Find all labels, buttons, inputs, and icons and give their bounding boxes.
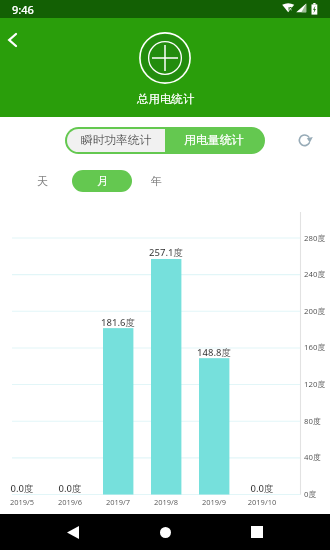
staticText: 40度: [304, 452, 321, 463]
button[interactable]: Back: [55, 514, 91, 550]
staticText: 0.0度: [0, 482, 52, 495]
staticText: 200度: [304, 306, 326, 317]
staticText: 0.0度: [232, 482, 292, 495]
staticText: 年: [151, 174, 162, 188]
staticText: 用电量统计: [184, 133, 244, 148]
staticText: 2019/10: [232, 497, 292, 507]
staticText: 2019/9: [184, 497, 244, 507]
button[interactable]: Recent apps: [239, 514, 275, 550]
staticText: 天: [37, 174, 48, 188]
staticText: 148.8度: [184, 346, 244, 359]
button[interactable]: 天: [30, 170, 54, 192]
staticText: 2019/5: [0, 497, 52, 507]
staticText: 0.0度: [40, 482, 100, 495]
staticText: 瞬时功率统计: [81, 133, 152, 148]
button[interactable]: Refresh: [293, 129, 316, 152]
staticText: 80度: [304, 416, 321, 427]
button[interactable]: Home: [147, 514, 183, 550]
staticText: 9:46: [12, 2, 34, 17]
staticText: 280度: [304, 233, 326, 244]
staticText: 257.1度: [136, 246, 196, 259]
button[interactable]: 瞬时功率统计: [67, 129, 165, 152]
button[interactable]: 用电量统计: [165, 129, 263, 152]
button[interactable]: 月: [72, 170, 132, 192]
staticText: 2019/8: [136, 497, 196, 507]
button[interactable]: 年: [144, 170, 168, 192]
staticText: 240度: [304, 269, 326, 280]
staticText: 181.6度: [88, 316, 148, 329]
staticText: 2019/7: [88, 497, 148, 507]
staticText: 160度: [304, 342, 326, 353]
staticText: 2019/6: [40, 497, 100, 507]
staticText: 总用电统计: [137, 92, 195, 106]
button[interactable]: Back: [0, 26, 26, 54]
staticText: 月: [97, 174, 108, 188]
staticText: 0度: [304, 489, 317, 500]
staticText: 120度: [304, 379, 326, 390]
